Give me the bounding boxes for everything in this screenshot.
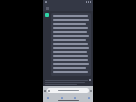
button[interactable]: Recents [73, 96, 76, 99]
button[interactable]: Home [60, 96, 63, 99]
button[interactable]: Back [46, 96, 49, 99]
button[interactable]: Profile [87, 96, 90, 99]
button[interactable]: Send [45, 79, 91, 81]
button[interactable] [48, 88, 88, 93]
button[interactable]: Assistant avatar [45, 13, 49, 17]
other: Send [89, 79, 91, 81]
button[interactable] [53, 15, 89, 74]
button[interactable]: Menu [45, 6, 49, 10]
button[interactable]: Tabs [44, 90, 46, 92]
